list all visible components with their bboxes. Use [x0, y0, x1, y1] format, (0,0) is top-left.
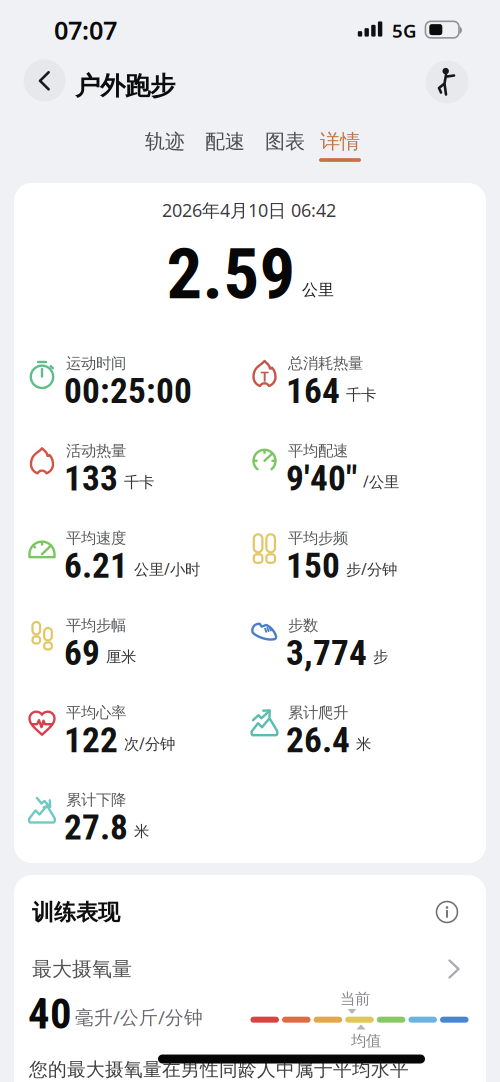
staticText: 配速 — [205, 129, 245, 154]
staticText: 厘米 — [106, 647, 136, 666]
staticText: 6.21 — [64, 545, 128, 586]
button[interactable]: 信息 — [436, 901, 457, 922]
staticText: 当前 — [340, 989, 370, 1009]
staticText: 2026年4月10日 06:42 — [162, 198, 336, 222]
staticText: 步数 — [288, 616, 318, 635]
staticText: 2.59 — [166, 233, 295, 315]
staticText: 米 — [356, 734, 371, 754]
staticText: 活动热量 — [66, 441, 126, 460]
staticText: 次/分钟 — [124, 733, 175, 754]
staticText: 公里/小时 — [134, 558, 200, 579]
staticText: 轨迹 — [145, 129, 185, 154]
staticText: 150 — [286, 545, 340, 586]
staticText: 平均速度 — [66, 528, 126, 548]
staticText: 07:07 — [54, 13, 117, 47]
staticText: 总消耗热量 — [288, 354, 363, 373]
staticText: 公里 — [302, 280, 334, 300]
staticText: T — [260, 366, 268, 386]
staticText: 您的最大摄氧量在男性同龄人中属于平均水平 — [29, 1058, 409, 1081]
staticText: 平均心率 — [66, 703, 126, 722]
staticText: 27.8 — [64, 807, 128, 848]
button[interactable]: 最大摄氧量 — [28, 945, 472, 993]
staticText: 图表 — [265, 129, 305, 154]
button[interactable]: 轨迹 — [137, 124, 193, 158]
staticText: 米 — [134, 822, 149, 841]
staticText: 133 — [64, 458, 118, 499]
staticText: 步/分钟 — [346, 558, 397, 579]
button[interactable]: 配速 — [197, 124, 253, 158]
staticText: 训练表现 — [32, 899, 120, 926]
staticText: 69 — [64, 632, 100, 674]
staticText: 9'40" — [286, 458, 357, 499]
staticText: 详情 — [320, 129, 360, 154]
staticText: 户外跑步 — [75, 70, 175, 102]
button[interactable]: 详情 — [312, 124, 368, 158]
staticText: 5G — [392, 18, 417, 43]
staticText: 运动时间 — [66, 354, 126, 373]
staticText: 122 — [64, 719, 118, 761]
staticText: 步 — [373, 647, 388, 666]
staticText: /公里 — [363, 471, 399, 492]
staticText: 均值 — [351, 1031, 381, 1051]
staticText: 40 — [28, 989, 72, 1039]
button[interactable]: 图表 — [257, 124, 313, 158]
staticText: 平均步幅 — [66, 616, 126, 635]
staticText: 累计下降 — [66, 790, 126, 810]
staticText: 平均配速 — [288, 441, 348, 460]
staticText: 千卡 — [346, 385, 376, 405]
button[interactable]: 运动员 — [425, 60, 468, 103]
staticText: 00:25:00 — [64, 370, 192, 412]
staticText: 平均步频 — [288, 528, 348, 548]
staticText: 26.4 — [286, 719, 350, 761]
staticText: 毫升/公斤/分钟 — [75, 1004, 203, 1030]
staticText: 累计爬升 — [288, 703, 348, 722]
button[interactable]: 返回 — [24, 59, 66, 101]
staticText: 164 — [286, 370, 340, 412]
staticText: 最大摄氧量 — [32, 956, 132, 982]
staticText: 3,774 — [286, 632, 367, 674]
staticText: 千卡 — [124, 473, 154, 492]
